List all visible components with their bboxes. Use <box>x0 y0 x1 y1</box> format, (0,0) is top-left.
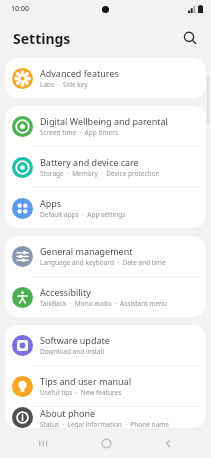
button[interactable]: Apps <box>5 188 206 228</box>
staticText: Useful tips · New features <box>40 388 122 397</box>
button[interactable]: Recents <box>23 429 63 457</box>
button[interactable]: Search <box>177 25 203 51</box>
button[interactable]: Digital Wellbeing and parental controls <box>5 106 206 146</box>
staticText: Apps <box>40 197 62 209</box>
staticText: Status · Legal information · Phone name <box>40 420 170 428</box>
button[interactable]: Accessibility <box>5 277 206 317</box>
staticText: Screen time · App timers <box>40 128 118 137</box>
button[interactable]: Tips and user manual <box>5 366 206 406</box>
staticText: Default apps · App settings <box>40 210 126 219</box>
staticText: Accessibility <box>40 286 91 298</box>
staticText: About phone <box>40 407 96 419</box>
staticText: Labs · Side key <box>40 80 88 89</box>
staticText: 10:00 <box>11 4 29 14</box>
button[interactable]: Home <box>86 429 126 457</box>
staticText: Download and install <box>40 347 105 356</box>
staticText: Tips and user manual <box>40 375 131 387</box>
button[interactable]: Software update <box>5 325 206 365</box>
button[interactable]: Back <box>148 429 188 457</box>
staticText: Settings <box>13 29 71 48</box>
staticText: Software update <box>40 334 110 346</box>
staticText: TalkBack · Mono audio · Assistant menu <box>40 299 168 308</box>
staticText: Language and keyboard · Date and time <box>40 258 166 267</box>
button[interactable]: Battery and device care <box>5 147 206 187</box>
staticText: General management <box>40 245 133 257</box>
button[interactable]: Advanced features <box>5 58 206 98</box>
button[interactable]: General management <box>5 236 206 276</box>
staticText: Battery and device care <box>40 156 139 168</box>
staticText: Advanced features <box>40 67 119 79</box>
button[interactable]: About phone <box>5 407 206 428</box>
staticText: Storage · Memory · Device protection <box>40 169 160 178</box>
staticText: Digital Wellbeing and parental controls <box>40 115 200 127</box>
